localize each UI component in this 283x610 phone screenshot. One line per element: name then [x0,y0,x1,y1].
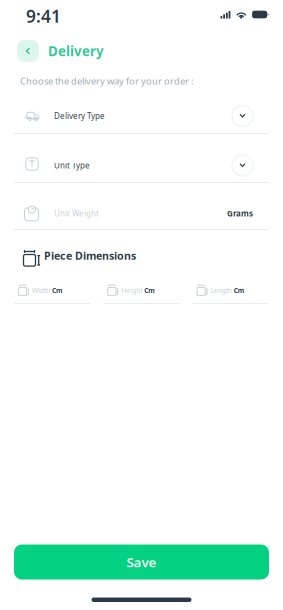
staticText: Unit Weight [54,208,99,219]
button[interactable]: Save [14,544,269,579]
staticText: Cm [232,286,245,295]
staticText: Width [32,286,50,295]
staticText: 9:41 [26,4,61,27]
staticText: Delivery [48,42,104,60]
staticText: Save [126,553,156,571]
staticText: Piece Dimensions [44,248,136,263]
button[interactable]: Unit Weight [0,198,283,230]
button[interactable]: Height [103,278,180,304]
button[interactable]: Back [17,40,39,62]
button[interactable]: Length [193,278,269,304]
staticText: Length [211,286,232,295]
staticText: Unit Type [54,160,90,171]
staticText: Choose the delivery way for your order : [20,75,194,87]
button[interactable]: Delivery Type [0,99,283,134]
button[interactable]: Width [14,278,90,304]
staticText: Cm [142,286,155,295]
button[interactable]: Unit Type [0,149,283,183]
staticText: Cm [50,286,63,295]
staticText: Delivery Type [54,111,105,121]
staticText: Height [121,286,142,295]
staticText: Grams [227,208,253,219]
